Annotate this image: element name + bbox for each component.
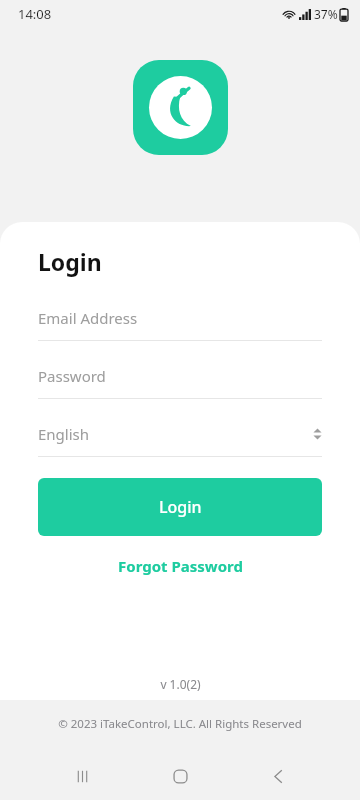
- staticText: v 1.0(2): [160, 676, 201, 692]
- button[interactable]: Back: [258, 756, 298, 796]
- button[interactable]: Recent apps: [62, 756, 102, 796]
- staticText: 14:08: [18, 5, 52, 23]
- staticText: 37%: [314, 6, 338, 22]
- button[interactable]: English: [38, 421, 322, 457]
- button[interactable]: Home: [160, 756, 200, 796]
- staticText: Email Address: [38, 308, 138, 328]
- button[interactable]: Email Address: [38, 305, 322, 341]
- staticText: © 2023 iTakeControl, LLC. All Rights Res…: [58, 716, 302, 732]
- staticText: Login: [38, 246, 102, 277]
- staticText: Forgot Password: [118, 556, 243, 576]
- staticText: Password: [38, 366, 106, 386]
- button[interactable]: Forgot Password: [0, 548, 360, 584]
- button[interactable]: Login: [38, 478, 322, 536]
- staticText: Login: [159, 496, 202, 518]
- staticText: English: [38, 424, 90, 444]
- button[interactable]: Password: [38, 363, 322, 399]
